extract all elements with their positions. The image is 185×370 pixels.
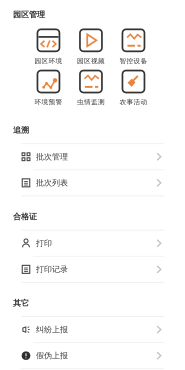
staticText: 合格证 xyxy=(13,212,37,221)
staticText: 批次管理 xyxy=(36,152,68,162)
staticText: 园区管理 xyxy=(13,10,45,19)
staticText: 打印记录 xyxy=(36,264,68,274)
button[interactable]: 农事活动 xyxy=(112,70,155,106)
button[interactable]: 智控设备 xyxy=(112,29,155,65)
staticText: 假伪上报 xyxy=(36,351,68,361)
staticText: 环境预警 xyxy=(34,98,62,106)
button[interactable]: 环境预警 xyxy=(27,70,70,106)
button[interactable]: 打印 xyxy=(0,231,185,256)
staticText: 纠纷上报 xyxy=(36,325,68,334)
staticText: 虫情监测 xyxy=(77,98,105,106)
button[interactable]: 批次列表 xyxy=(0,170,185,195)
button[interactable]: 园区环境 xyxy=(27,29,70,65)
staticText: 智控设备 xyxy=(119,57,147,65)
staticText: 园区环境 xyxy=(34,57,62,65)
staticText: 其它 xyxy=(13,298,29,308)
staticText: 农事活动 xyxy=(119,98,147,106)
button[interactable]: 打印记录 xyxy=(0,257,185,282)
button[interactable]: 批次管理 xyxy=(0,144,185,169)
button[interactable]: 园区视频 xyxy=(70,29,112,65)
button[interactable]: 纠纷上报 xyxy=(0,317,185,342)
staticText: 追溯 xyxy=(13,125,29,135)
staticText: 园区视频 xyxy=(77,57,105,65)
staticText: 打印 xyxy=(36,238,52,248)
staticText: 批次列表 xyxy=(36,178,68,188)
button[interactable]: 虫情监测 xyxy=(70,70,112,106)
button[interactable]: 假伪上报 xyxy=(0,343,185,368)
